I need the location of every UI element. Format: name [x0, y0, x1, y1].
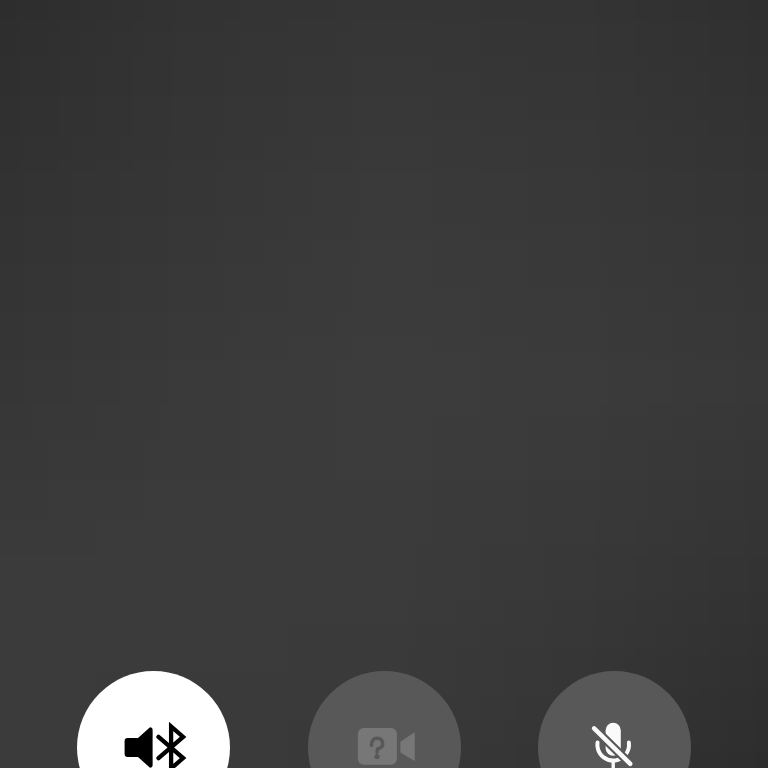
button[interactable]: Mute microphone: [538, 671, 691, 768]
button[interactable]: Bluetooth audio, on: [77, 671, 230, 768]
button[interactable]: Turn on video: [308, 671, 461, 768]
